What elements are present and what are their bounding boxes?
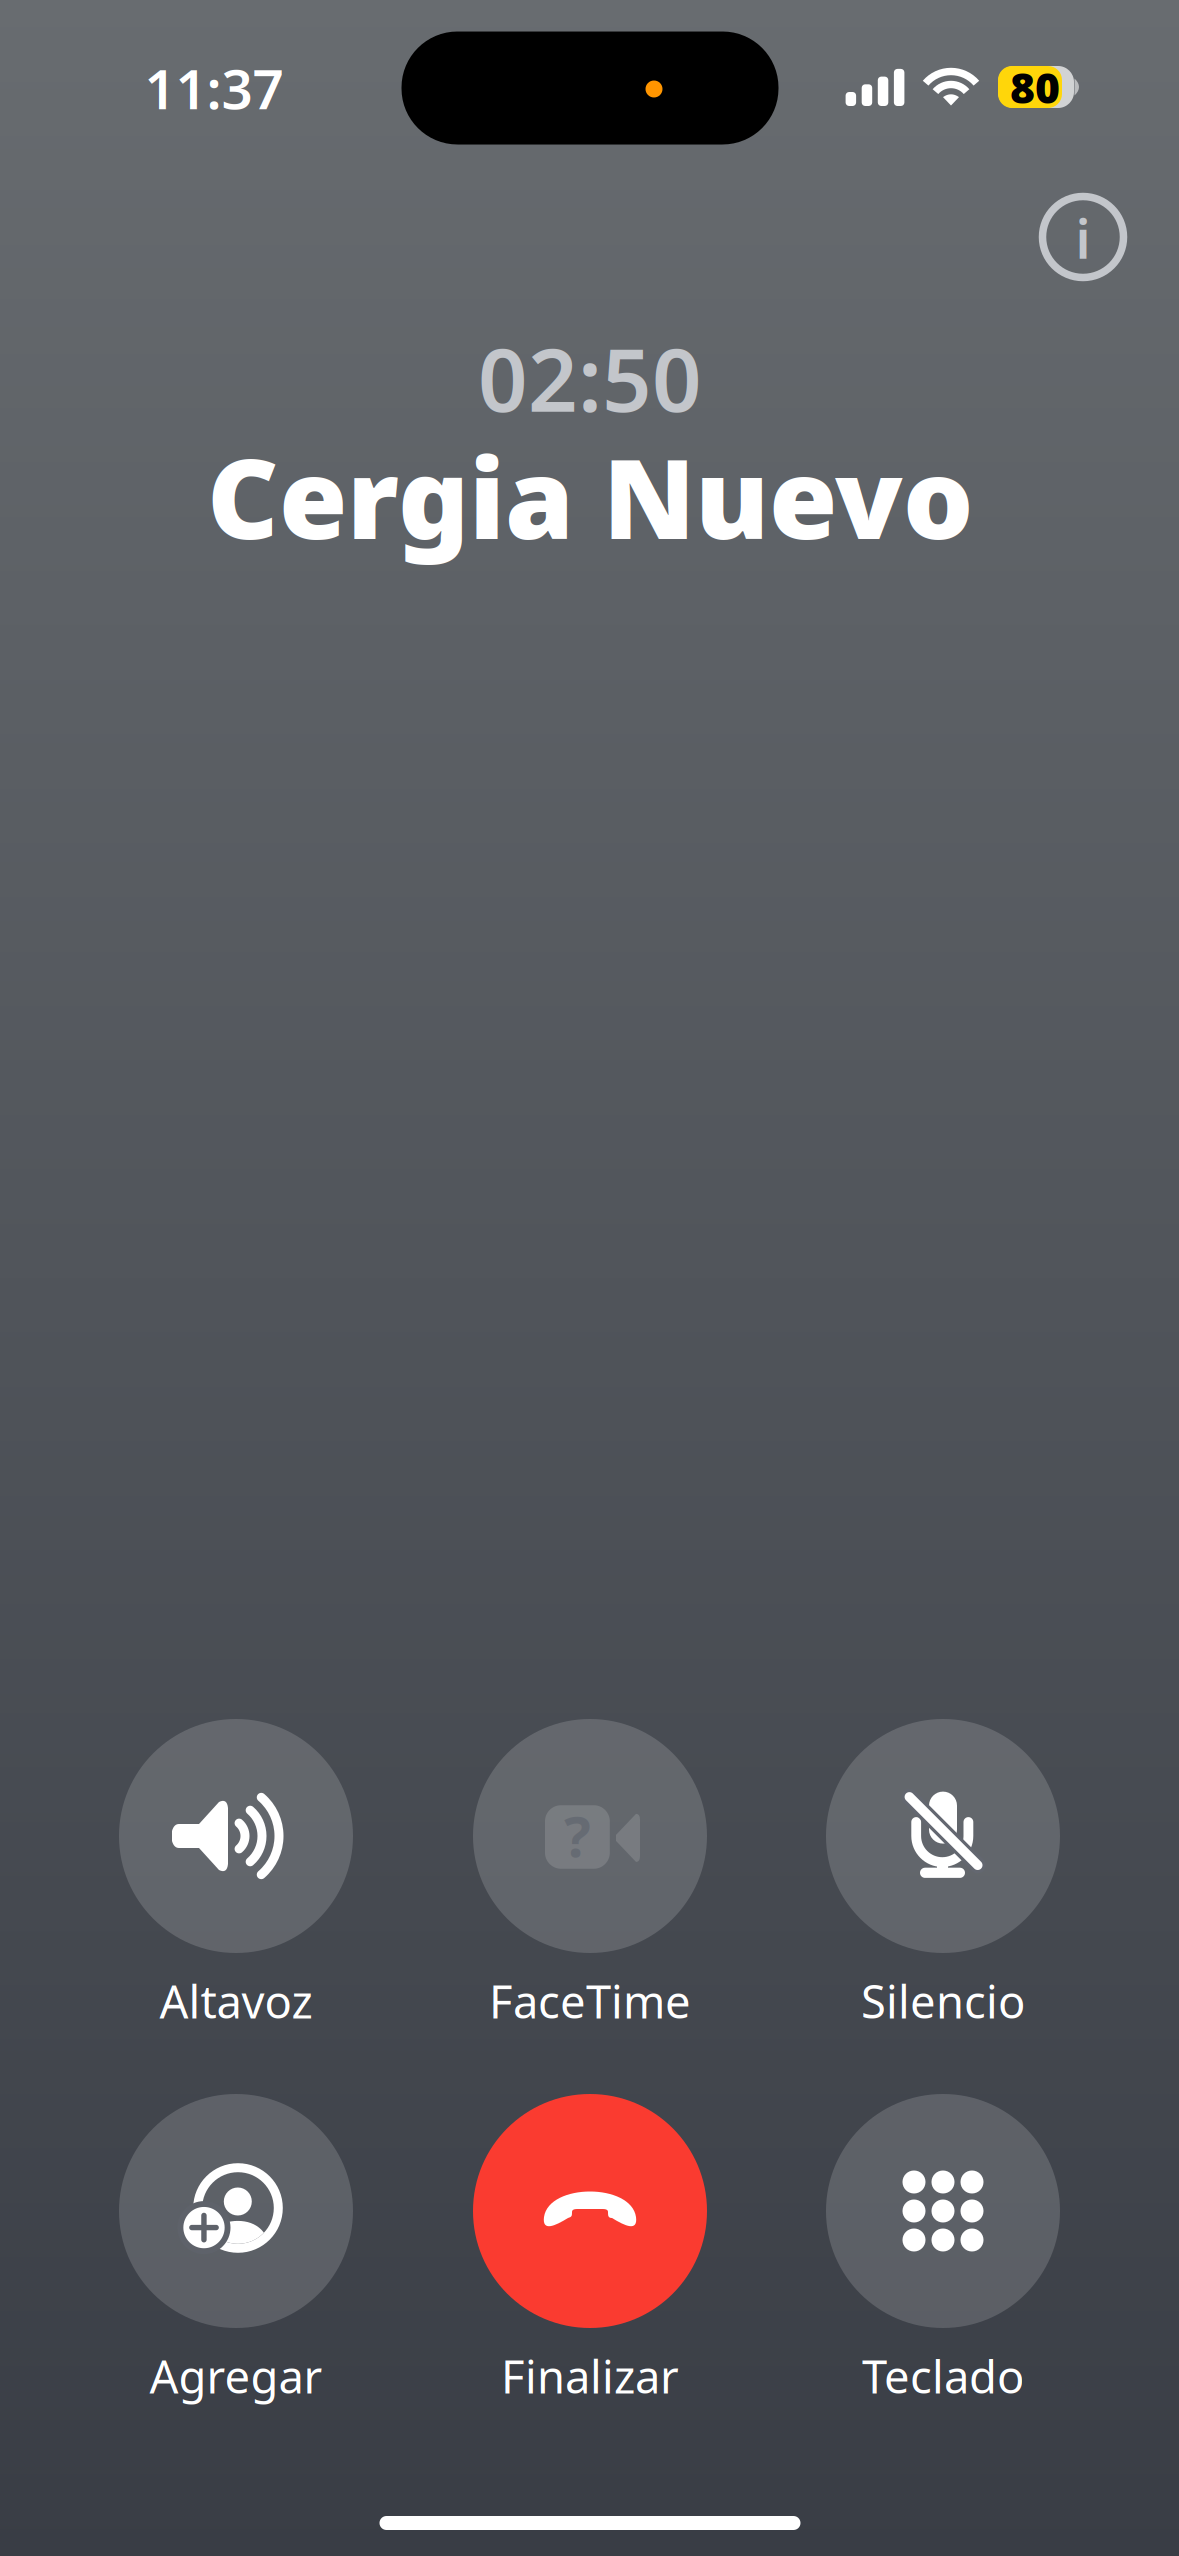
staticText: 11:37 (144, 52, 283, 124)
button[interactable]: Agregar (71, 2094, 401, 2414)
button[interactable]: Teclado (778, 2094, 1108, 2414)
staticText: i (1075, 203, 1090, 273)
staticText: 02:50 (478, 320, 702, 436)
staticText: FaceTime (489, 1971, 691, 2031)
staticText: Silencio (861, 1971, 1025, 2031)
staticText: Altavoz (159, 1971, 312, 2031)
staticText: Agregar (149, 2346, 322, 2406)
staticText: 80 (1010, 59, 1060, 115)
staticText: Finalizar (501, 2346, 679, 2406)
staticText: ? (564, 1798, 591, 1873)
button[interactable]: ? (425, 1719, 755, 2039)
staticText: Teclado (862, 2346, 1024, 2406)
button[interactable]: Altavoz (71, 1719, 401, 2039)
staticText: Cergia Nuevo (207, 422, 973, 569)
button[interactable]: Información de la llamada (1023, 177, 1143, 297)
button[interactable]: Silencio (778, 1719, 1108, 2039)
button[interactable]: Finalizar (425, 2094, 755, 2414)
